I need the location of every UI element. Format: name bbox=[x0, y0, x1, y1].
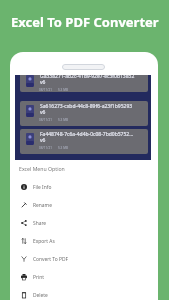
button[interactable]: Rename bbox=[15, 196, 151, 214]
staticText: v6 bbox=[40, 137, 46, 144]
staticText: Sa616273-cxbd-44c8-89f6-a23f1b95293 bbox=[40, 103, 135, 110]
button[interactable]: Delete bbox=[15, 286, 151, 300]
staticText: Excel To PDF Converter bbox=[11, 13, 159, 31]
other: File Info bbox=[21, 184, 27, 190]
staticText: Convert To PDF bbox=[33, 256, 69, 263]
staticText: 5.3 MB bbox=[58, 118, 68, 122]
staticText: Print bbox=[33, 274, 45, 281]
button[interactable]: Convert To PDF bbox=[15, 250, 151, 268]
staticText: 08/11/21 bbox=[39, 146, 52, 150]
staticText: 5.3 MB bbox=[58, 88, 68, 92]
staticText: File Info bbox=[33, 184, 52, 191]
staticText: Rename bbox=[33, 202, 52, 209]
staticText: Excel Menu Option bbox=[19, 165, 65, 172]
staticText: Share bbox=[33, 220, 47, 227]
staticText: 08/11/21 bbox=[39, 118, 52, 122]
button[interactable]: Ga338271-ab2c-41d9-92e7-ec3f0b13852 bbox=[20, 75, 148, 92]
button[interactable]: Share bbox=[15, 214, 151, 232]
button[interactable]: File Info bbox=[15, 178, 151, 196]
button[interactable]: Print bbox=[15, 268, 151, 286]
button[interactable]: Fa448748-7c6a-4d4b-0c08-7bd0b5752b1 bbox=[20, 129, 148, 154]
staticText: Export As bbox=[33, 238, 55, 245]
staticText: 08/11/21 bbox=[39, 88, 52, 92]
staticText: Delete bbox=[33, 292, 48, 299]
button[interactable]: Export As bbox=[15, 232, 151, 250]
staticText: v6 bbox=[40, 79, 46, 86]
staticText: 5.3 MB bbox=[58, 146, 68, 150]
button[interactable]: Sa616273-cxbd-44c8-89f6-a23f1b95293 bbox=[20, 101, 148, 126]
staticText: Ga338271-ab2c-41d9-92e7-ec3f0b13852 bbox=[40, 75, 135, 80]
staticText: Fa448748-7c6a-4d4b-0c08-7bd0b5752b1 bbox=[40, 131, 135, 138]
staticText: v6 bbox=[40, 109, 46, 116]
